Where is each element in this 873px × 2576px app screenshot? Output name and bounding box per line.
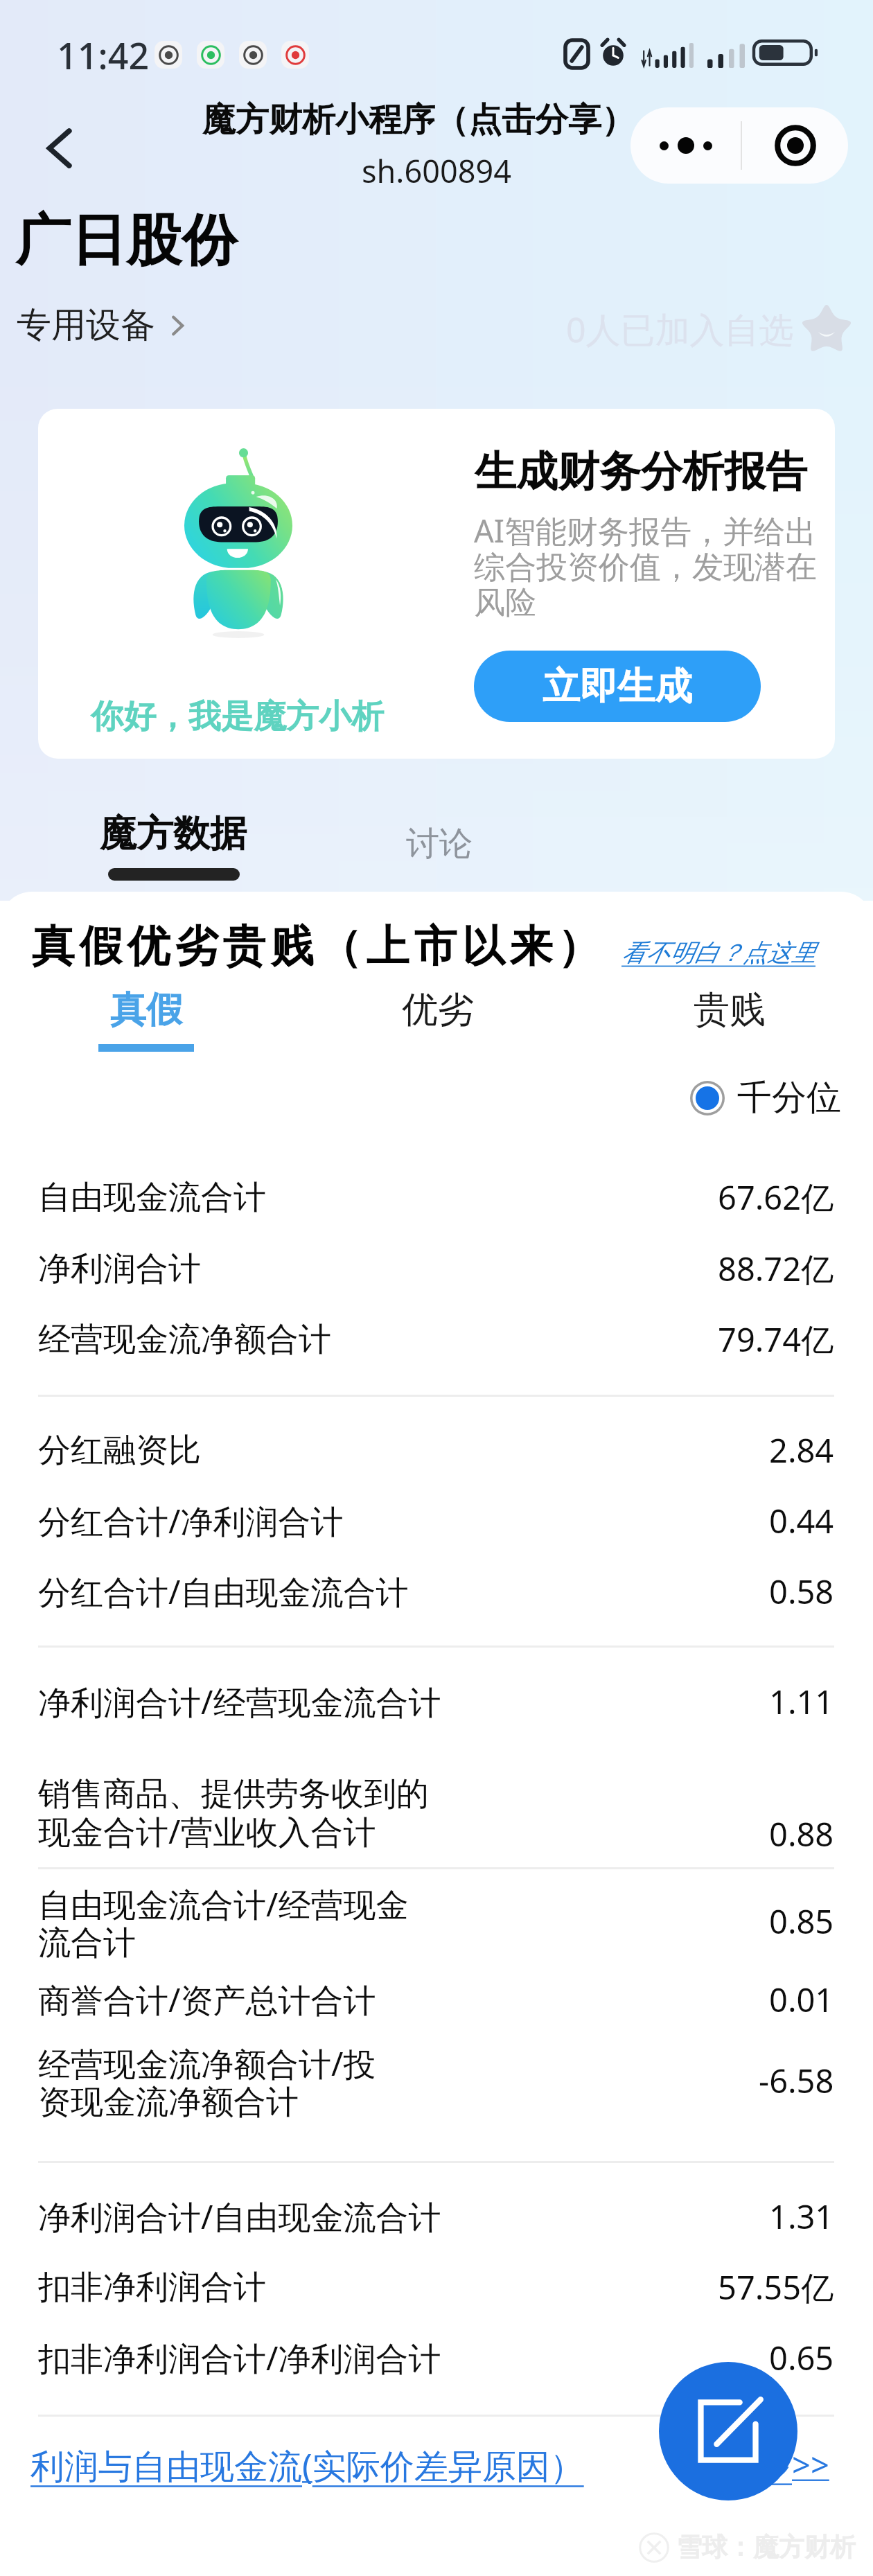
staticText: 11:42	[57, 30, 150, 80]
staticText: 扣非净利润合计/净利润合计	[38, 2336, 441, 2380]
button[interactable]: 看不明白？点这里	[621, 937, 815, 968]
staticText: 分红合计/自由现金流合计	[38, 1569, 409, 1614]
staticText: 0.01	[769, 1977, 834, 2022]
staticText: 广日股份	[15, 206, 237, 276]
button[interactable]: 魔方数据	[83, 797, 263, 894]
staticText: 扣非净利润合计	[38, 2267, 266, 2308]
button[interactable]: 净利润合计/自由现金流合计	[0, 2181, 873, 2252]
staticText: 0.44	[769, 1499, 834, 1543]
staticText: 你好，我是魔方小析	[91, 696, 384, 737]
staticText: 贵贱	[694, 987, 766, 1033]
staticText: 商誉合计/资产总计合计	[38, 1977, 376, 2022]
staticText: -6.58	[759, 2058, 834, 2103]
button[interactable]: 商誉合计/资产总计合计	[0, 1964, 873, 2035]
button[interactable]: 利润与自由现金流(实际价差异原因）	[30, 2442, 584, 2489]
staticText: 自由现金流合计/经营现金 流合计	[38, 1882, 409, 1961]
staticText: 净利润合计	[38, 1249, 201, 1289]
button[interactable]: 更多	[630, 107, 848, 184]
staticText: 立即生成	[543, 663, 692, 710]
staticText: 销售商品、提供劳务收到的 现金合计/营业收入合计	[38, 1774, 429, 1853]
staticText: AI智能财务报告，并给出 综合投资价值，发现潜在 风险	[474, 509, 817, 622]
button[interactable]: 销售商品、提供劳务收到的 现金合计/营业收入合计	[0, 1774, 873, 1853]
staticText: 0.65	[769, 2336, 834, 2380]
button[interactable]: 你好，我是魔方小析	[38, 409, 835, 759]
button[interactable]: 分红融资比	[0, 1415, 873, 1485]
button[interactable]: 自由现金流合计/经营现金 流合计	[0, 1882, 873, 1961]
staticText: 真假	[110, 987, 182, 1033]
button[interactable]: 千分位	[690, 1076, 841, 1120]
staticText: 自由现金流合计	[38, 1177, 266, 1218]
staticText: 千分位	[737, 1076, 841, 1120]
button[interactable]: 净利润合计/经营现金流合计	[0, 1666, 873, 1737]
staticText: 魔方数据	[100, 811, 247, 857]
button[interactable]: 真假	[49, 987, 243, 1064]
staticText: 67.62亿	[718, 1175, 834, 1219]
staticText: 1.31	[769, 2194, 834, 2239]
button[interactable]: 魔方财析小程序（点击分享）	[202, 99, 635, 141]
staticText: 1.11	[769, 1679, 834, 1724]
staticText: 经营现金流净额合计/投 资现金流净额合计	[38, 2041, 376, 2120]
button[interactable]: 分红合计/净利润合计	[0, 1485, 873, 1556]
button[interactable]: 讨论	[406, 823, 473, 865]
staticText: 净利润合计/经营现金流合计	[38, 1679, 441, 1724]
staticText: 雪球：魔方财析	[676, 2531, 856, 2564]
staticText: 57.55亿	[718, 2265, 834, 2309]
staticText: 79.74亿	[718, 1317, 834, 1361]
staticText: 专用设备	[17, 303, 155, 347]
button[interactable]: 净利润合计	[0, 1233, 873, 1304]
button[interactable]: 扣非净利润合计/净利润合计	[0, 2322, 873, 2393]
button[interactable]: 优劣	[341, 987, 535, 1064]
button[interactable]: 返回	[22, 109, 100, 187]
button[interactable]: 更多>>	[727, 2442, 829, 2487]
button[interactable]: 自由现金流合计	[0, 1162, 873, 1233]
staticText: 净利润合计/自由现金流合计	[38, 2194, 441, 2239]
button[interactable]: 立即生成	[474, 651, 761, 722]
staticText: 生成财务分析报告	[475, 445, 807, 498]
button[interactable]: 专用设备	[17, 303, 190, 347]
staticText: 0.58	[769, 1569, 834, 1614]
button[interactable]: 0人已加入自选	[566, 301, 856, 358]
staticText: 0人已加入自选	[566, 306, 794, 353]
button[interactable]: 经营现金流净额合计	[0, 1304, 873, 1375]
staticText: 2.84	[769, 1428, 834, 1472]
button[interactable]: 扣非净利润合计	[0, 2252, 873, 2322]
staticText: 真假优劣贵贱（上市以来）	[29, 919, 603, 973]
staticText: 88.72亿	[718, 1246, 834, 1291]
staticText: 分红合计/净利润合计	[38, 1499, 344, 1543]
staticText: 经营现金流净额合计	[38, 1319, 331, 1360]
staticText: 分红融资比	[38, 1430, 201, 1471]
button[interactable]: 贵贱	[633, 987, 827, 1064]
staticText: 优劣	[402, 987, 474, 1033]
staticText: sh.600894	[362, 150, 511, 192]
button[interactable]: 经营现金流净额合计/投 资现金流净额合计	[0, 2041, 873, 2120]
button[interactable]: 写笔记	[659, 2362, 797, 2500]
staticText: 0.88	[769, 1812, 834, 1856]
button[interactable]: 分红合计/自由现金流合计	[0, 1556, 873, 1627]
staticText: 0.85	[769, 1899, 834, 1943]
